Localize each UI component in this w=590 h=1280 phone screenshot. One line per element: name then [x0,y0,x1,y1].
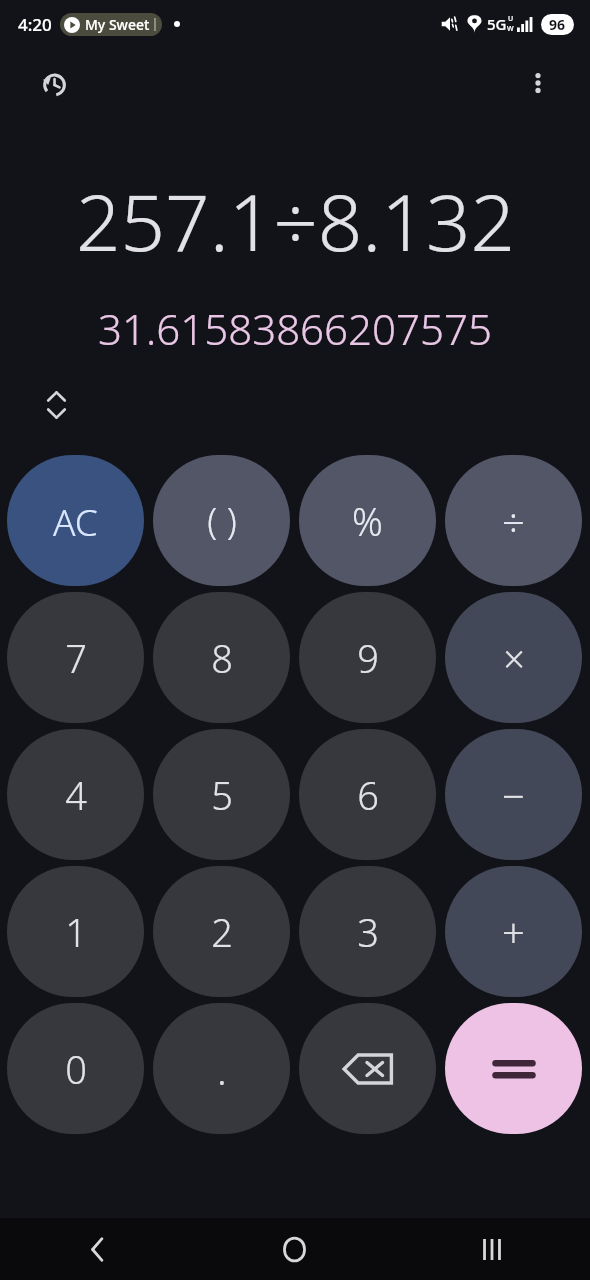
button[interactable]: 4 [7,729,144,860]
staticText: 6 [357,769,379,821]
button[interactable]: More options [516,61,560,105]
staticText: . [217,1042,227,1096]
button[interactable]: ( ) [153,455,290,586]
staticText: My Sweet [85,15,150,34]
button[interactable]: Equals [445,1003,582,1134]
staticText: AC [53,496,98,546]
button[interactable]: 7 [7,592,144,723]
staticText: % [352,495,383,547]
staticText: 31.61583866207575 [98,300,492,357]
staticText: + [502,905,525,959]
button[interactable]: 9 [299,592,436,723]
button[interactable]: % [299,455,436,586]
staticText: × [503,632,525,684]
staticText: 1 [65,906,87,958]
staticText: W [507,24,514,34]
staticText: 4 [65,769,87,821]
button[interactable]: Expand [36,385,76,425]
button[interactable]: Divide [445,455,582,586]
button[interactable]: Home [196,1218,393,1280]
button[interactable]: AC [7,455,144,586]
button[interactable]: 8 [153,592,290,723]
staticText: − [502,768,525,822]
button[interactable]: . [153,1003,290,1134]
staticText: 0 [65,1043,87,1095]
button[interactable]: 3 [299,866,436,997]
button[interactable]: Multiply [445,592,582,723]
button[interactable]: Minus [445,729,582,860]
button[interactable]: History [30,61,74,105]
staticText: 96 [549,15,566,34]
staticText: U [508,14,514,24]
button[interactable]: Backspace [299,1003,436,1134]
staticText: ÷ [502,494,525,548]
button[interactable]: 2 [153,866,290,997]
button[interactable]: Back [0,1218,196,1280]
staticText: 5G [487,14,507,34]
button[interactable]: Recent apps [393,1218,590,1280]
button[interactable]: Plus [445,866,582,997]
staticText: 5 [211,769,233,821]
staticText: 257.1÷8.132 [76,168,515,274]
staticText: 7 [65,632,87,684]
button[interactable]: 1 [7,866,144,997]
button[interactable]: 0 [7,1003,144,1134]
staticText: 8 [211,632,233,684]
button[interactable]: 5 [153,729,290,860]
staticText: 3 [357,906,379,958]
staticText: 9 [357,632,379,684]
button[interactable]: 6 [299,729,436,860]
staticText: 4:20 [18,13,52,36]
staticText: 2 [211,906,233,958]
staticText: ( ) [207,496,237,545]
